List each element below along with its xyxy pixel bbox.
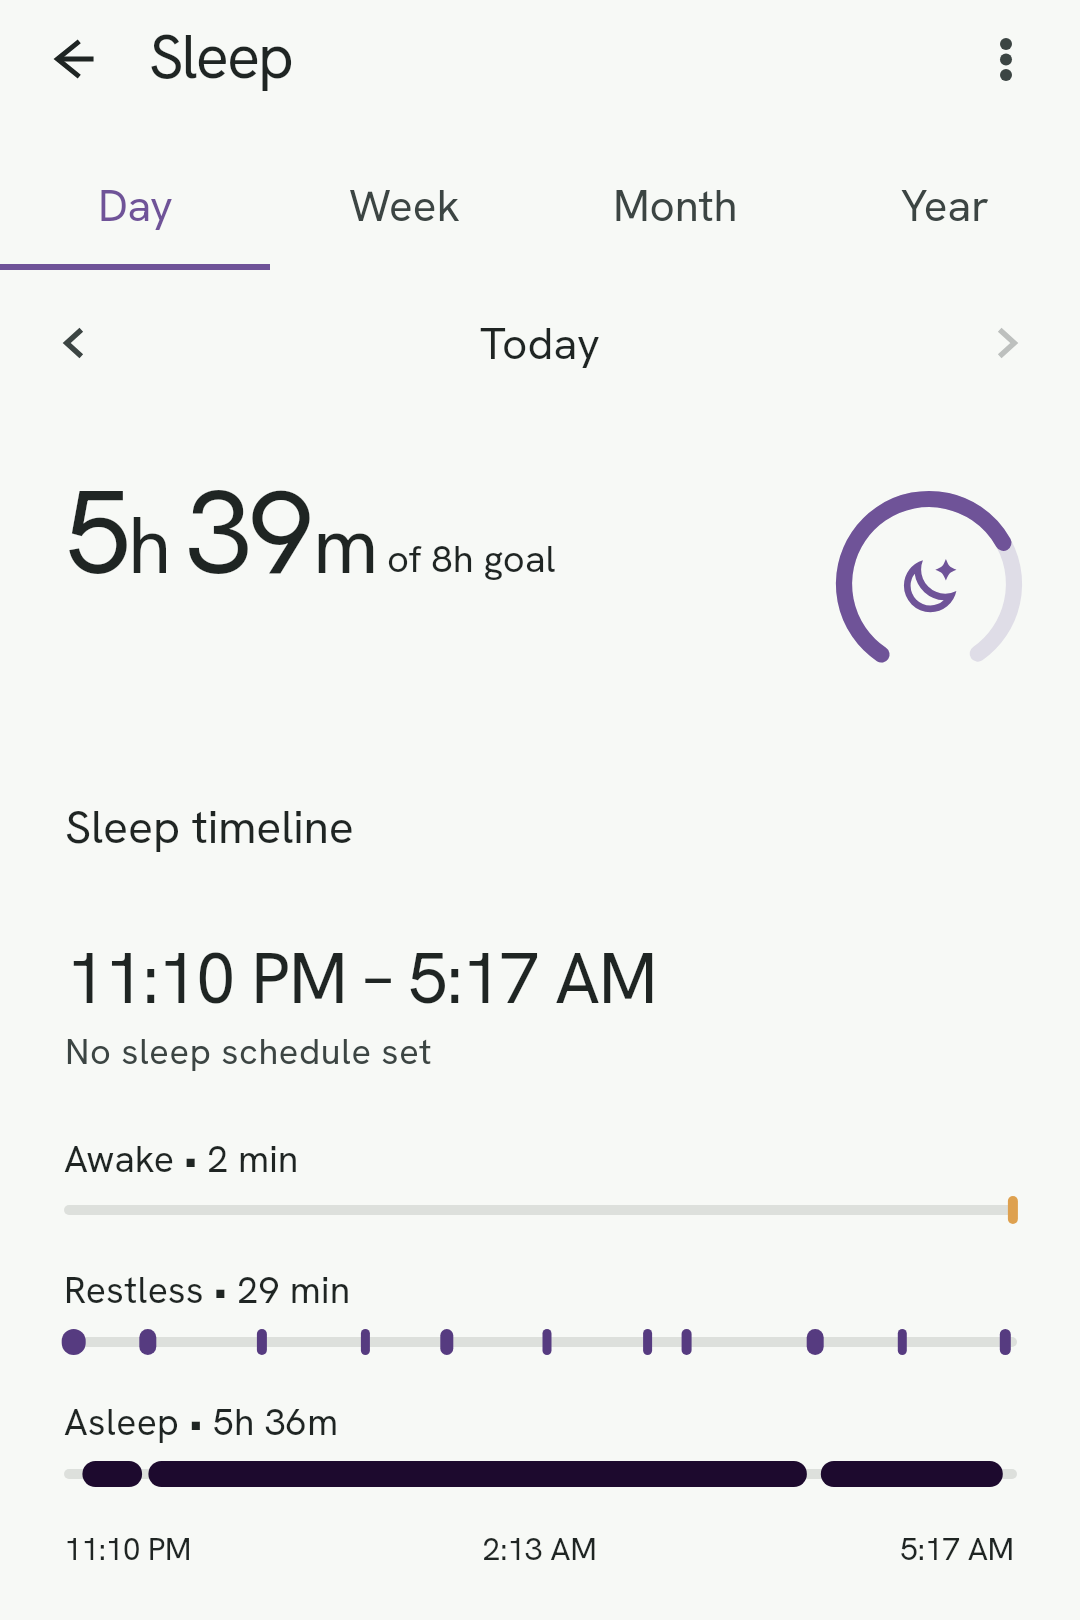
button[interactable]: Previous day — [28, 297, 120, 389]
staticText: 5:17 AM — [899, 1528, 1014, 1570]
button[interactable]: More options — [958, 11, 1054, 107]
staticText: Today — [480, 315, 601, 372]
button[interactable]: Day — [0, 177, 270, 257]
button[interactable]: Week — [270, 177, 540, 257]
staticText: m — [313, 494, 379, 597]
staticText: of 8h goal — [387, 534, 556, 584]
staticText: Asleep • 5h 36m — [64, 1398, 339, 1447]
button[interactable]: Year — [810, 177, 1080, 257]
button[interactable]: Today — [400, 297, 680, 389]
button[interactable]: Month — [540, 177, 810, 257]
staticText: Week — [349, 177, 461, 234]
staticText: Restless • 29 min — [64, 1266, 351, 1315]
staticText: 11:10 PM — [64, 1528, 192, 1570]
staticText: 5 — [65, 455, 132, 609]
staticText: Day — [98, 177, 173, 234]
staticText: Year — [901, 177, 990, 234]
button[interactable]: Back — [27, 11, 123, 107]
staticText: h — [128, 494, 172, 597]
staticText: No sleep schedule set — [65, 1028, 433, 1075]
staticText: 11:10 PM – 5:17 AM — [66, 932, 657, 1024]
staticText: Sleep — [149, 16, 293, 96]
button[interactable]: Next day — [961, 297, 1053, 389]
staticText: 39 — [186, 455, 311, 609]
staticText: Month — [613, 177, 738, 234]
staticText: Awake • 2 min — [64, 1134, 299, 1183]
staticText: Sleep timeline — [65, 796, 354, 857]
staticText: 2:13 AM — [482, 1528, 597, 1570]
